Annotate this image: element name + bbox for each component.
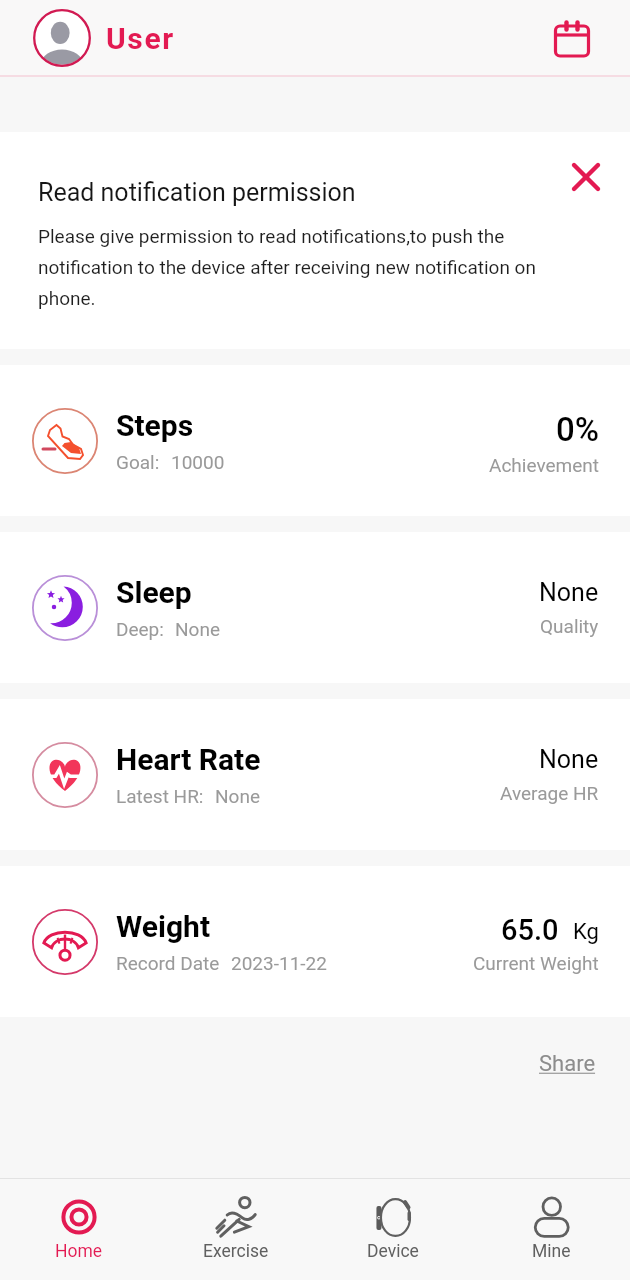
button[interactable]: Close [561,152,611,202]
staticText: 0% [556,410,599,449]
staticText: User [106,21,175,56]
staticText: Share [539,1051,596,1077]
button[interactable]: Steps [0,365,630,516]
staticText: Mine [532,1241,571,1262]
staticText: Sleep [116,575,192,610]
staticText: Current Weight [473,952,599,974]
button[interactable]: User [0,9,185,67]
staticText: None [215,785,260,807]
staticText: Average HR [500,782,599,804]
staticText: Achievement [489,454,599,476]
staticText: Record Date [116,952,220,974]
staticText: 10000 [171,451,225,473]
staticText: None [175,618,220,640]
staticText: Device [367,1241,419,1262]
staticText: Steps [116,408,194,443]
staticText: Read notification permission [38,178,356,207]
staticText: Latest HR: [116,785,204,807]
staticText: Weight [116,909,211,944]
staticText: Quality [540,615,599,637]
staticText: Deep: [116,618,164,640]
staticText: Kg [573,919,599,945]
button[interactable]: Sleep [0,532,630,683]
button[interactable]: Home [0,1179,157,1280]
staticText: None [539,578,599,607]
staticText: Goal: [116,451,160,473]
staticText: None [539,745,599,774]
button[interactable]: Mine [472,1179,630,1280]
button[interactable]: Exercise [157,1179,314,1280]
button[interactable]: Weight [0,866,630,1017]
staticText: Home [55,1241,103,1262]
button[interactable]: Calendar [550,16,594,60]
staticText: 65.0 [501,913,559,947]
button[interactable]: Share [531,1043,604,1085]
staticText: Heart Rate [116,742,261,777]
button[interactable]: Device [314,1179,472,1280]
staticText: Please give permission to read notificat… [38,225,592,309]
staticText: 2023-11-22 [231,952,327,974]
button[interactable]: Heart Rate [0,699,630,850]
staticText: Exercise [203,1241,269,1262]
